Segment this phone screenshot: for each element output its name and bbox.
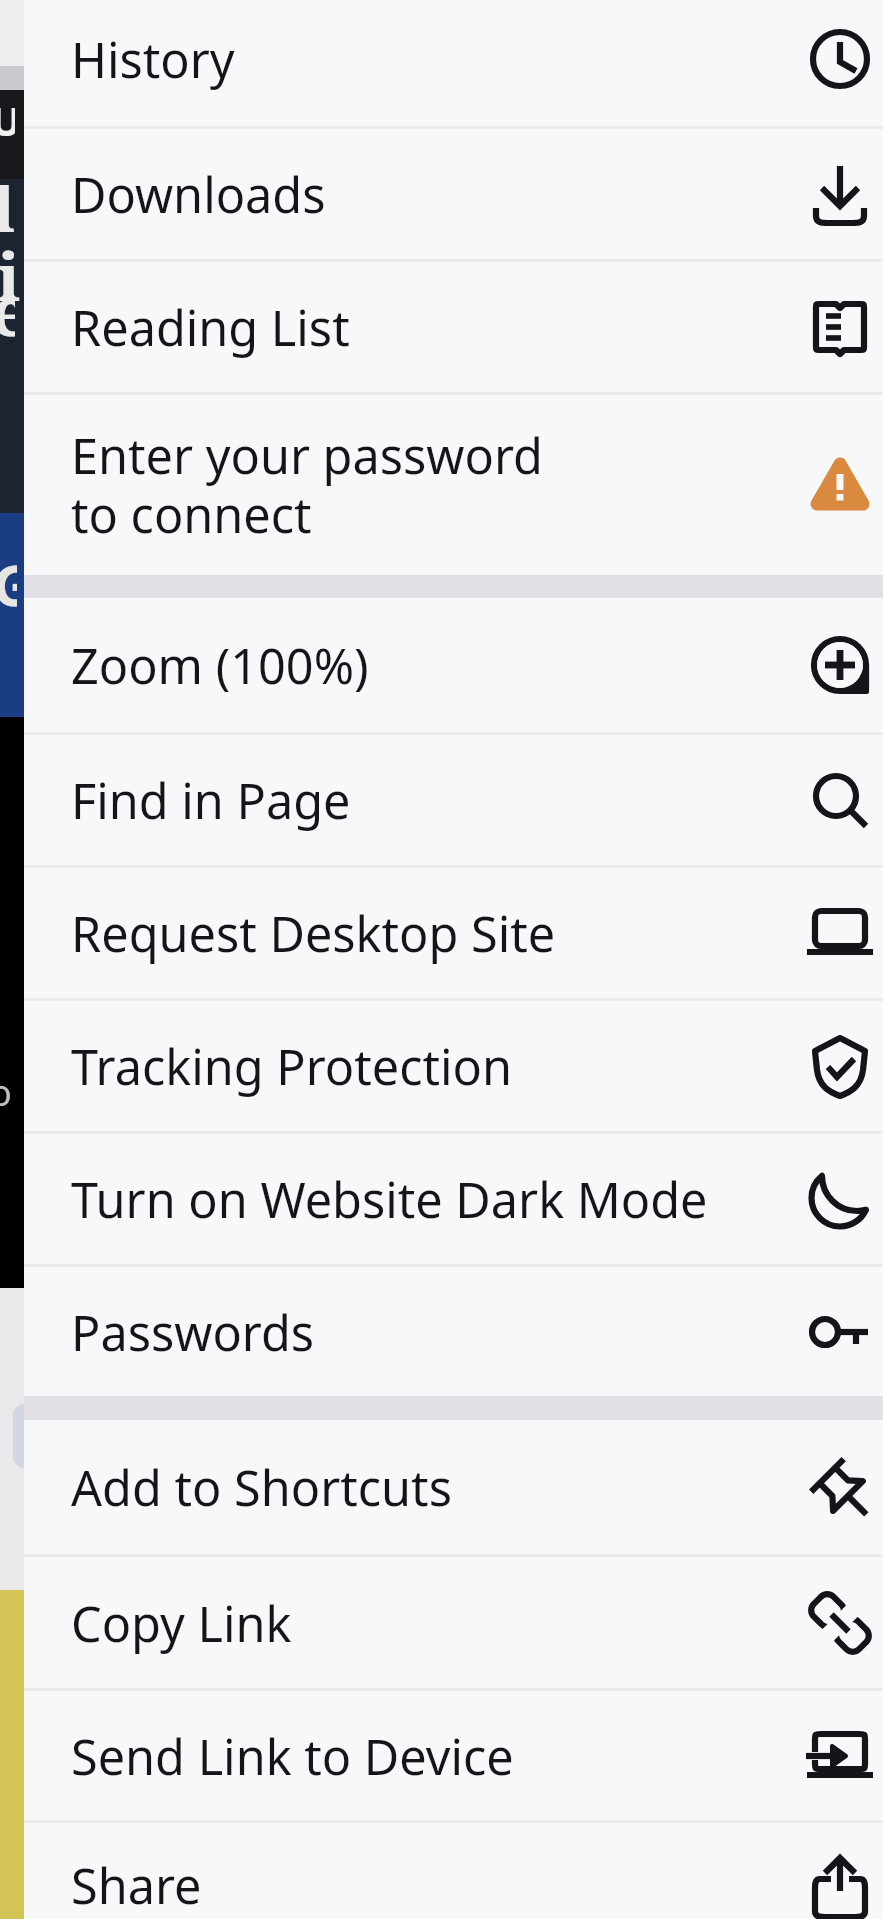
button[interactable]: Tracking Protection (24, 1001, 883, 1131)
staticText: Downloads (71, 161, 803, 227)
button[interactable]: Copy Link (24, 1557, 883, 1688)
staticText: ic (0, 230, 21, 320)
staticText: Request Desktop Site (71, 900, 803, 966)
other: Dark mode (800, 1159, 880, 1239)
staticText: Enter your password to connect (71, 422, 803, 548)
other: Send link to device (800, 1716, 880, 1796)
staticText: Add to Shortcuts (71, 1454, 803, 1520)
button[interactable]: Share (24, 1823, 883, 1919)
staticText: History (71, 26, 803, 92)
other: Downloads (800, 154, 880, 234)
staticText: Tracking Protection (71, 1033, 803, 1099)
button[interactable]: Passwords (24, 1267, 883, 1396)
other: Share (800, 1845, 880, 1919)
other: Tracking protection (800, 1026, 880, 1106)
other: Add to shortcuts (800, 1447, 880, 1527)
other: Reading List (800, 287, 880, 367)
staticText: Turn on Website Dark Mode (71, 1166, 803, 1232)
staticText: Zoom (100%) (71, 632, 803, 698)
staticText: o (0, 1068, 12, 1117)
staticText: Reading List (71, 294, 803, 360)
other: Find in page (800, 760, 880, 840)
other: History (800, 19, 880, 99)
staticText: l (0, 166, 15, 250)
other: Copy link (800, 1583, 880, 1663)
button[interactable]: Enter your password to connect (24, 395, 883, 575)
other: Passwords (800, 1292, 880, 1372)
staticText: Copy Link (71, 1590, 803, 1656)
button[interactable]: Downloads (24, 129, 883, 259)
button[interactable]: Find in Page (24, 735, 883, 865)
button[interactable]: Zoom (100%) (24, 598, 883, 732)
staticText: Send Link to Device (71, 1723, 803, 1789)
button[interactable]: Turn on Website Dark Mode (24, 1134, 883, 1264)
staticText: G: (0, 547, 17, 622)
button[interactable]: Add to Shortcuts (24, 1420, 883, 1554)
button[interactable]: History (24, 0, 883, 126)
other: Warning (800, 445, 880, 525)
staticText: UR (0, 93, 15, 147)
staticText: Share (71, 1852, 803, 1918)
other: Zoom in (800, 625, 880, 705)
staticText: Find in Page (71, 767, 803, 833)
button[interactable]: Request Desktop Site (24, 868, 883, 998)
staticText: Passwords (71, 1299, 803, 1365)
staticText: el (0, 265, 15, 355)
button[interactable]: Send Link to Device (24, 1691, 883, 1820)
other: Desktop site (800, 893, 880, 973)
button[interactable]: Reading List (24, 262, 883, 392)
